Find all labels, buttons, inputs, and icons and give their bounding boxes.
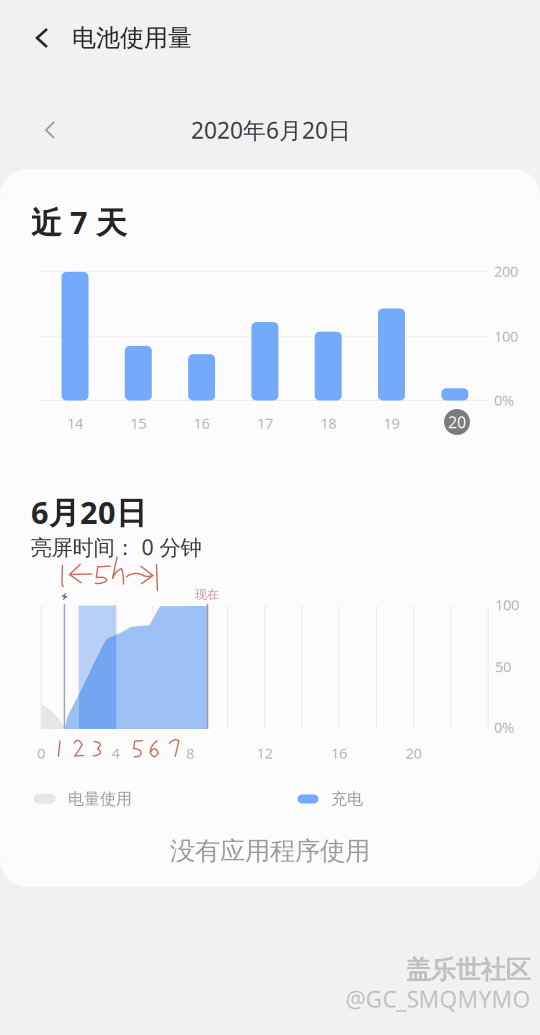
staticText: 0%	[494, 390, 514, 410]
staticText: 18	[320, 413, 336, 433]
staticText: 100	[495, 595, 519, 614]
staticText: 盖乐世社区	[405, 954, 530, 985]
button[interactable]: Previous day	[22, 102, 78, 158]
staticText: 没有应用程序使用	[170, 835, 370, 866]
staticText: 15	[130, 413, 146, 433]
staticText: 100	[494, 326, 518, 346]
button[interactable]: 20	[444, 409, 470, 435]
staticText: 8	[186, 743, 194, 763]
staticText: 2020年6月20日	[191, 115, 351, 145]
staticText: 亮屏时间： 0 分钟	[30, 533, 201, 561]
staticText: 19	[383, 413, 399, 433]
staticText: 200	[494, 261, 518, 281]
staticText: 16	[194, 413, 210, 433]
button[interactable]: Back	[7, 3, 77, 73]
staticText: 充电	[331, 789, 363, 809]
staticText: 6月20日	[31, 492, 147, 532]
staticText: 14	[67, 413, 83, 433]
staticText: 12	[257, 743, 273, 763]
staticText: 20	[406, 743, 422, 763]
staticText: 4	[111, 743, 119, 763]
staticText: 0	[37, 743, 45, 763]
staticText: 电量使用	[68, 789, 132, 809]
staticText: 电池使用量	[72, 23, 192, 53]
staticText: 17	[257, 413, 273, 433]
staticText: 现在	[195, 587, 219, 602]
staticText: 20	[448, 411, 466, 433]
staticText: 16	[331, 743, 347, 763]
staticText: 50	[495, 657, 511, 676]
staticText: 近 7 天	[31, 202, 127, 242]
staticText: 0%	[494, 717, 514, 737]
staticText: @GC_SMQMYMO	[345, 984, 530, 1014]
